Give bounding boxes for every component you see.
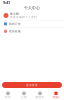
staticText: 查看并编辑个人资料 <box>10 15 37 19</box>
staticText: 退出登录 <box>26 83 38 87</box>
staticText: 分类 <box>21 96 27 99</box>
staticText: 购物车 <box>35 96 44 99</box>
staticText: 我的订单 <box>9 22 21 26</box>
button[interactable]: 退出登录 <box>2 82 62 88</box>
staticText: 我的收藏 <box>9 30 21 33</box>
button[interactable]: 购物车 <box>32 90 48 99</box>
button[interactable]: 我的订单 <box>0 20 64 27</box>
button[interactable]: 我的 <box>48 90 64 99</box>
staticText: 我的 <box>53 96 59 99</box>
button[interactable]: 我的收藏 <box>0 28 64 35</box>
staticText: 9:41 <box>3 0 10 5</box>
staticText: 首页 <box>5 96 11 99</box>
staticText: 张小明 <box>10 12 19 15</box>
staticText: 个人中心 <box>24 5 40 10</box>
button[interactable]: 首页 <box>0 90 16 99</box>
button[interactable]: 分类 <box>16 90 32 99</box>
